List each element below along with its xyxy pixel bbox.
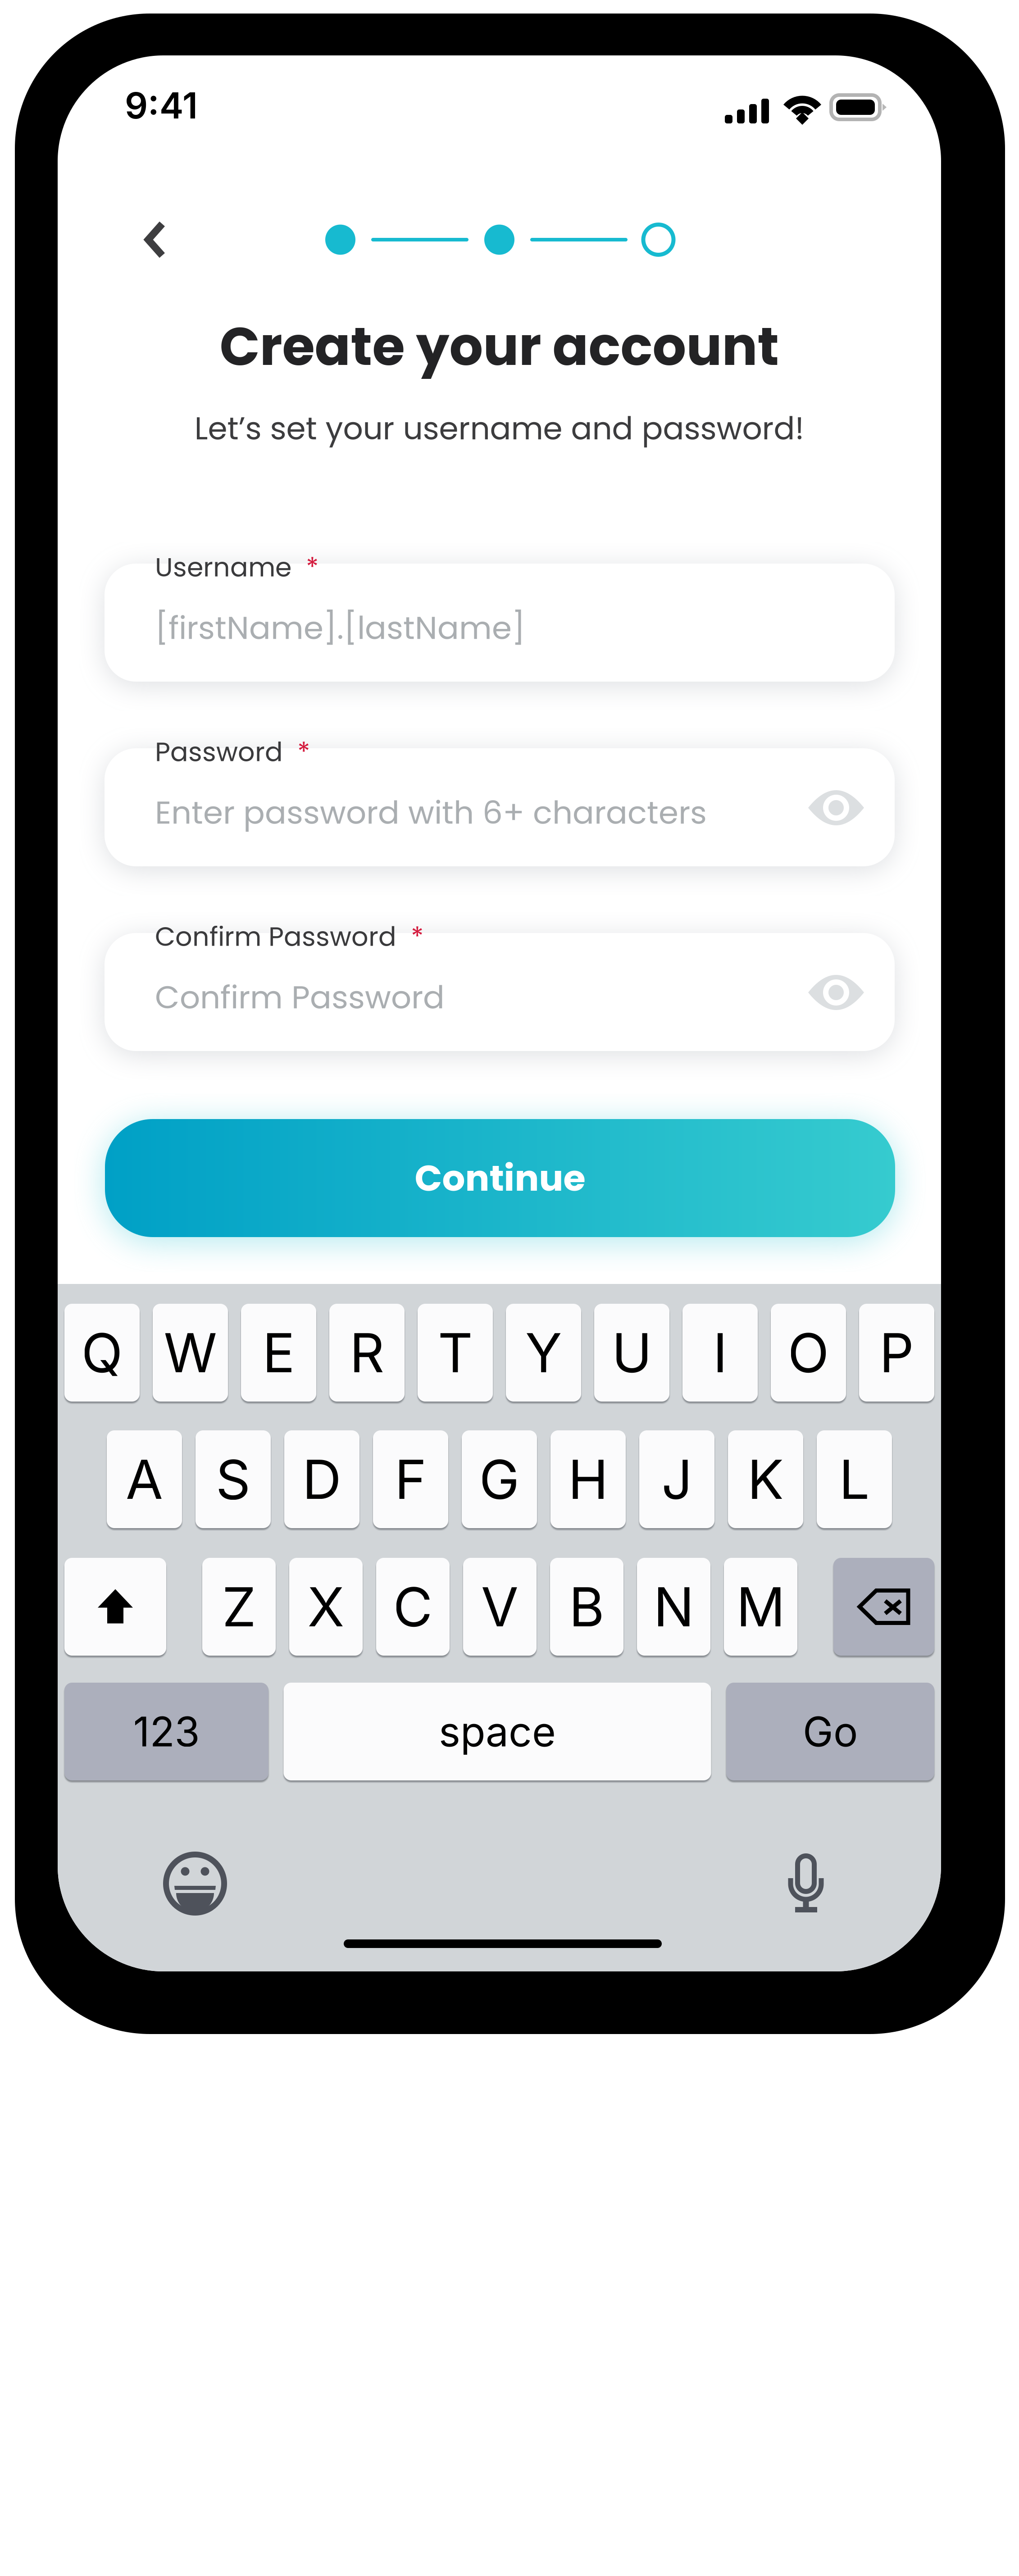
button[interactable]: T: [418, 1304, 493, 1402]
button[interactable]: N: [637, 1558, 710, 1656]
button[interactable]: B: [550, 1558, 623, 1656]
button[interactable]: S: [196, 1430, 271, 1528]
staticText: S: [216, 1447, 250, 1512]
button[interactable]: F: [373, 1430, 448, 1528]
button[interactable]: H: [550, 1430, 626, 1528]
staticText: X: [307, 1574, 344, 1639]
staticText: *: [291, 549, 319, 586]
staticText: [firstName].[lastName]: [155, 605, 525, 650]
button[interactable]: [firstName].[lastName]: [105, 564, 895, 682]
staticText: E: [262, 1320, 295, 1385]
staticText: B: [569, 1574, 605, 1639]
button[interactable]: Emoji keyboard: [163, 1852, 227, 1916]
button[interactable]: L: [817, 1430, 892, 1528]
staticText: P: [879, 1320, 914, 1385]
button[interactable]: V: [463, 1558, 537, 1656]
staticText: K: [747, 1447, 784, 1512]
button[interactable]: P: [859, 1304, 934, 1402]
button[interactable]: [64, 1558, 166, 1656]
button[interactable]: 123: [64, 1683, 268, 1780]
button[interactable]: [833, 1558, 934, 1656]
staticText: M: [736, 1574, 785, 1639]
button[interactable]: R: [329, 1304, 405, 1402]
staticText: Confirm Password: [155, 975, 445, 1019]
button[interactable]: Enter password with 6+ characters: [105, 748, 895, 866]
staticText: O: [788, 1320, 829, 1385]
staticText: R: [350, 1320, 384, 1385]
staticText: V: [481, 1574, 519, 1639]
staticText: D: [302, 1447, 341, 1512]
button[interactable]: W: [153, 1304, 228, 1402]
staticText: space: [439, 1707, 556, 1756]
staticText: Z: [222, 1574, 256, 1639]
button[interactable]: X: [289, 1558, 363, 1656]
staticText: N: [653, 1574, 694, 1639]
button[interactable]: I: [682, 1304, 758, 1402]
staticText: Create your account: [220, 309, 779, 383]
staticText: L: [839, 1447, 870, 1512]
button[interactable]: Q: [64, 1304, 140, 1402]
button[interactable]: Confirm Password: [105, 933, 895, 1051]
staticText: A: [126, 1447, 163, 1512]
staticText: Password: [155, 733, 283, 770]
button[interactable]: Y: [506, 1304, 581, 1402]
staticText: G: [479, 1447, 520, 1512]
button[interactable]: C: [376, 1558, 450, 1656]
button[interactable]: space: [284, 1683, 711, 1780]
staticText: J: [662, 1447, 692, 1512]
button[interactable]: Continue: [105, 1119, 895, 1237]
staticText: F: [395, 1447, 427, 1512]
staticText: H: [568, 1447, 608, 1512]
staticText: T: [438, 1320, 473, 1385]
staticText: 9:41: [125, 84, 198, 127]
button[interactable]: G: [462, 1430, 537, 1528]
staticText: Continue: [415, 1153, 585, 1203]
staticText: Go: [803, 1707, 858, 1756]
button[interactable]: Back: [144, 220, 166, 259]
staticText: Username: [155, 549, 291, 586]
staticText: Enter password with 6+ characters: [155, 790, 707, 835]
button[interactable]: E: [241, 1304, 316, 1402]
button[interactable]: D: [284, 1430, 359, 1528]
button[interactable]: A: [107, 1430, 182, 1528]
staticText: *: [283, 733, 310, 770]
button[interactable]: U: [594, 1304, 669, 1402]
staticText: Y: [525, 1320, 562, 1385]
button[interactable]: Z: [202, 1558, 276, 1656]
button[interactable]: O: [771, 1304, 846, 1402]
staticText: Q: [81, 1320, 123, 1385]
staticText: W: [164, 1320, 217, 1385]
staticText: Confirm Password: [155, 918, 396, 955]
button[interactable]: Go: [726, 1683, 934, 1780]
staticText: Let’s set your username and password!: [194, 407, 804, 450]
staticText: U: [612, 1320, 652, 1385]
button[interactable]: M: [724, 1558, 797, 1656]
staticText: *: [396, 918, 424, 955]
staticText: 123: [133, 1707, 200, 1756]
staticText: I: [713, 1320, 727, 1385]
button[interactable]: Dictation: [788, 1853, 824, 1912]
button[interactable]: K: [728, 1430, 803, 1528]
staticText: C: [393, 1574, 433, 1639]
button[interactable]: J: [639, 1430, 714, 1528]
